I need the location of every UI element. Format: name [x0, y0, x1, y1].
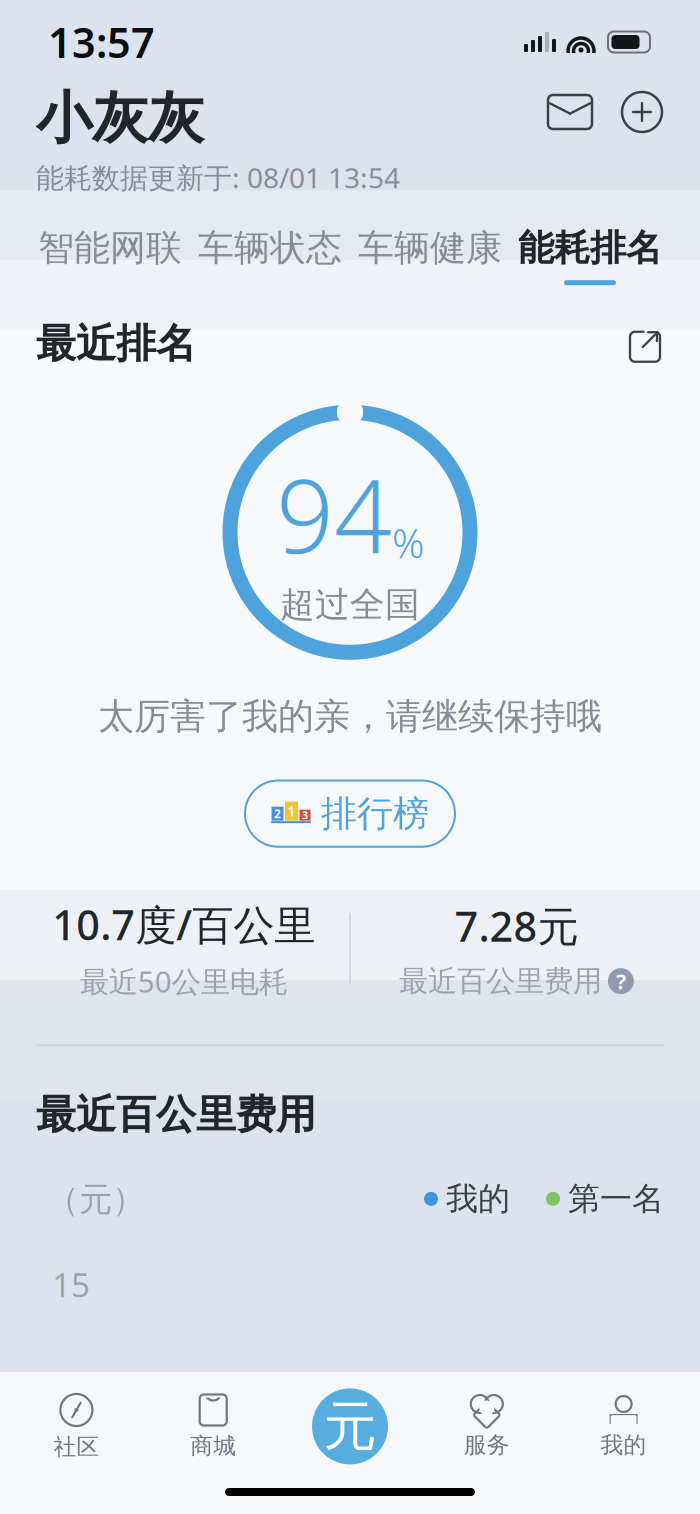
staticText: 13:57 — [48, 15, 155, 69]
staticText: 我的 — [446, 1179, 510, 1218]
button[interactable]: 车辆状态 — [190, 226, 350, 285]
staticText: 车辆状态 — [198, 226, 342, 270]
button[interactable]: Add — [620, 90, 664, 134]
staticText: 7.28元 — [454, 898, 578, 953]
staticText: 排行榜 — [321, 791, 429, 836]
button[interactable]: Help — [608, 968, 634, 994]
staticText: 小灰灰 — [36, 84, 204, 153]
staticText: 能耗数据更新于: 08/01 13:54 — [36, 159, 400, 196]
button[interactable]: 社区 — [8, 1386, 145, 1467]
staticText: 1 — [287, 802, 295, 820]
staticText: ? — [616, 967, 626, 995]
button[interactable]: 能耗排名 — [510, 226, 670, 285]
staticText: 元 — [323, 1394, 376, 1459]
staticText: 15 — [52, 1262, 90, 1306]
staticText: 最近百公里费用 — [36, 1090, 316, 1139]
staticText: 最近50公里电耗 — [80, 962, 288, 1001]
staticText: 太厉害了我的亲，请继续保持哦 — [98, 694, 602, 738]
staticText: 智能网联 — [38, 226, 182, 270]
button[interactable]: Share — [626, 325, 664, 363]
staticText: 商城 — [190, 1432, 236, 1460]
staticText: （元） — [46, 1179, 145, 1220]
staticText: 最近百公里费用 — [399, 963, 602, 999]
staticText: 3 — [302, 808, 308, 822]
staticText: % — [392, 516, 424, 569]
button[interactable]: Home — [282, 1388, 418, 1464]
staticText: 能耗排名 — [518, 226, 662, 270]
button[interactable]: 商城 — [145, 1387, 282, 1466]
staticText: 服务 — [464, 1431, 510, 1459]
button[interactable]: 车辆健康 — [350, 226, 510, 285]
staticText: 最近排名 — [36, 319, 196, 368]
staticText: 超过全国 — [280, 583, 420, 626]
staticText: 10.7度/百公里 — [52, 897, 315, 952]
button[interactable]: 服务 — [418, 1388, 555, 1465]
staticText: 第一名 — [568, 1179, 664, 1218]
button[interactable]: Messages — [546, 92, 594, 132]
staticText: 2 — [274, 806, 281, 822]
staticText: 94 — [276, 447, 392, 581]
staticText: 车辆健康 — [358, 226, 502, 270]
staticText: 社区 — [53, 1433, 99, 1461]
button[interactable]: 智能网联 — [30, 226, 190, 285]
button[interactable]: 我的 — [555, 1388, 692, 1465]
staticText: 我的 — [601, 1431, 647, 1459]
button[interactable]: 2 — [245, 780, 455, 847]
